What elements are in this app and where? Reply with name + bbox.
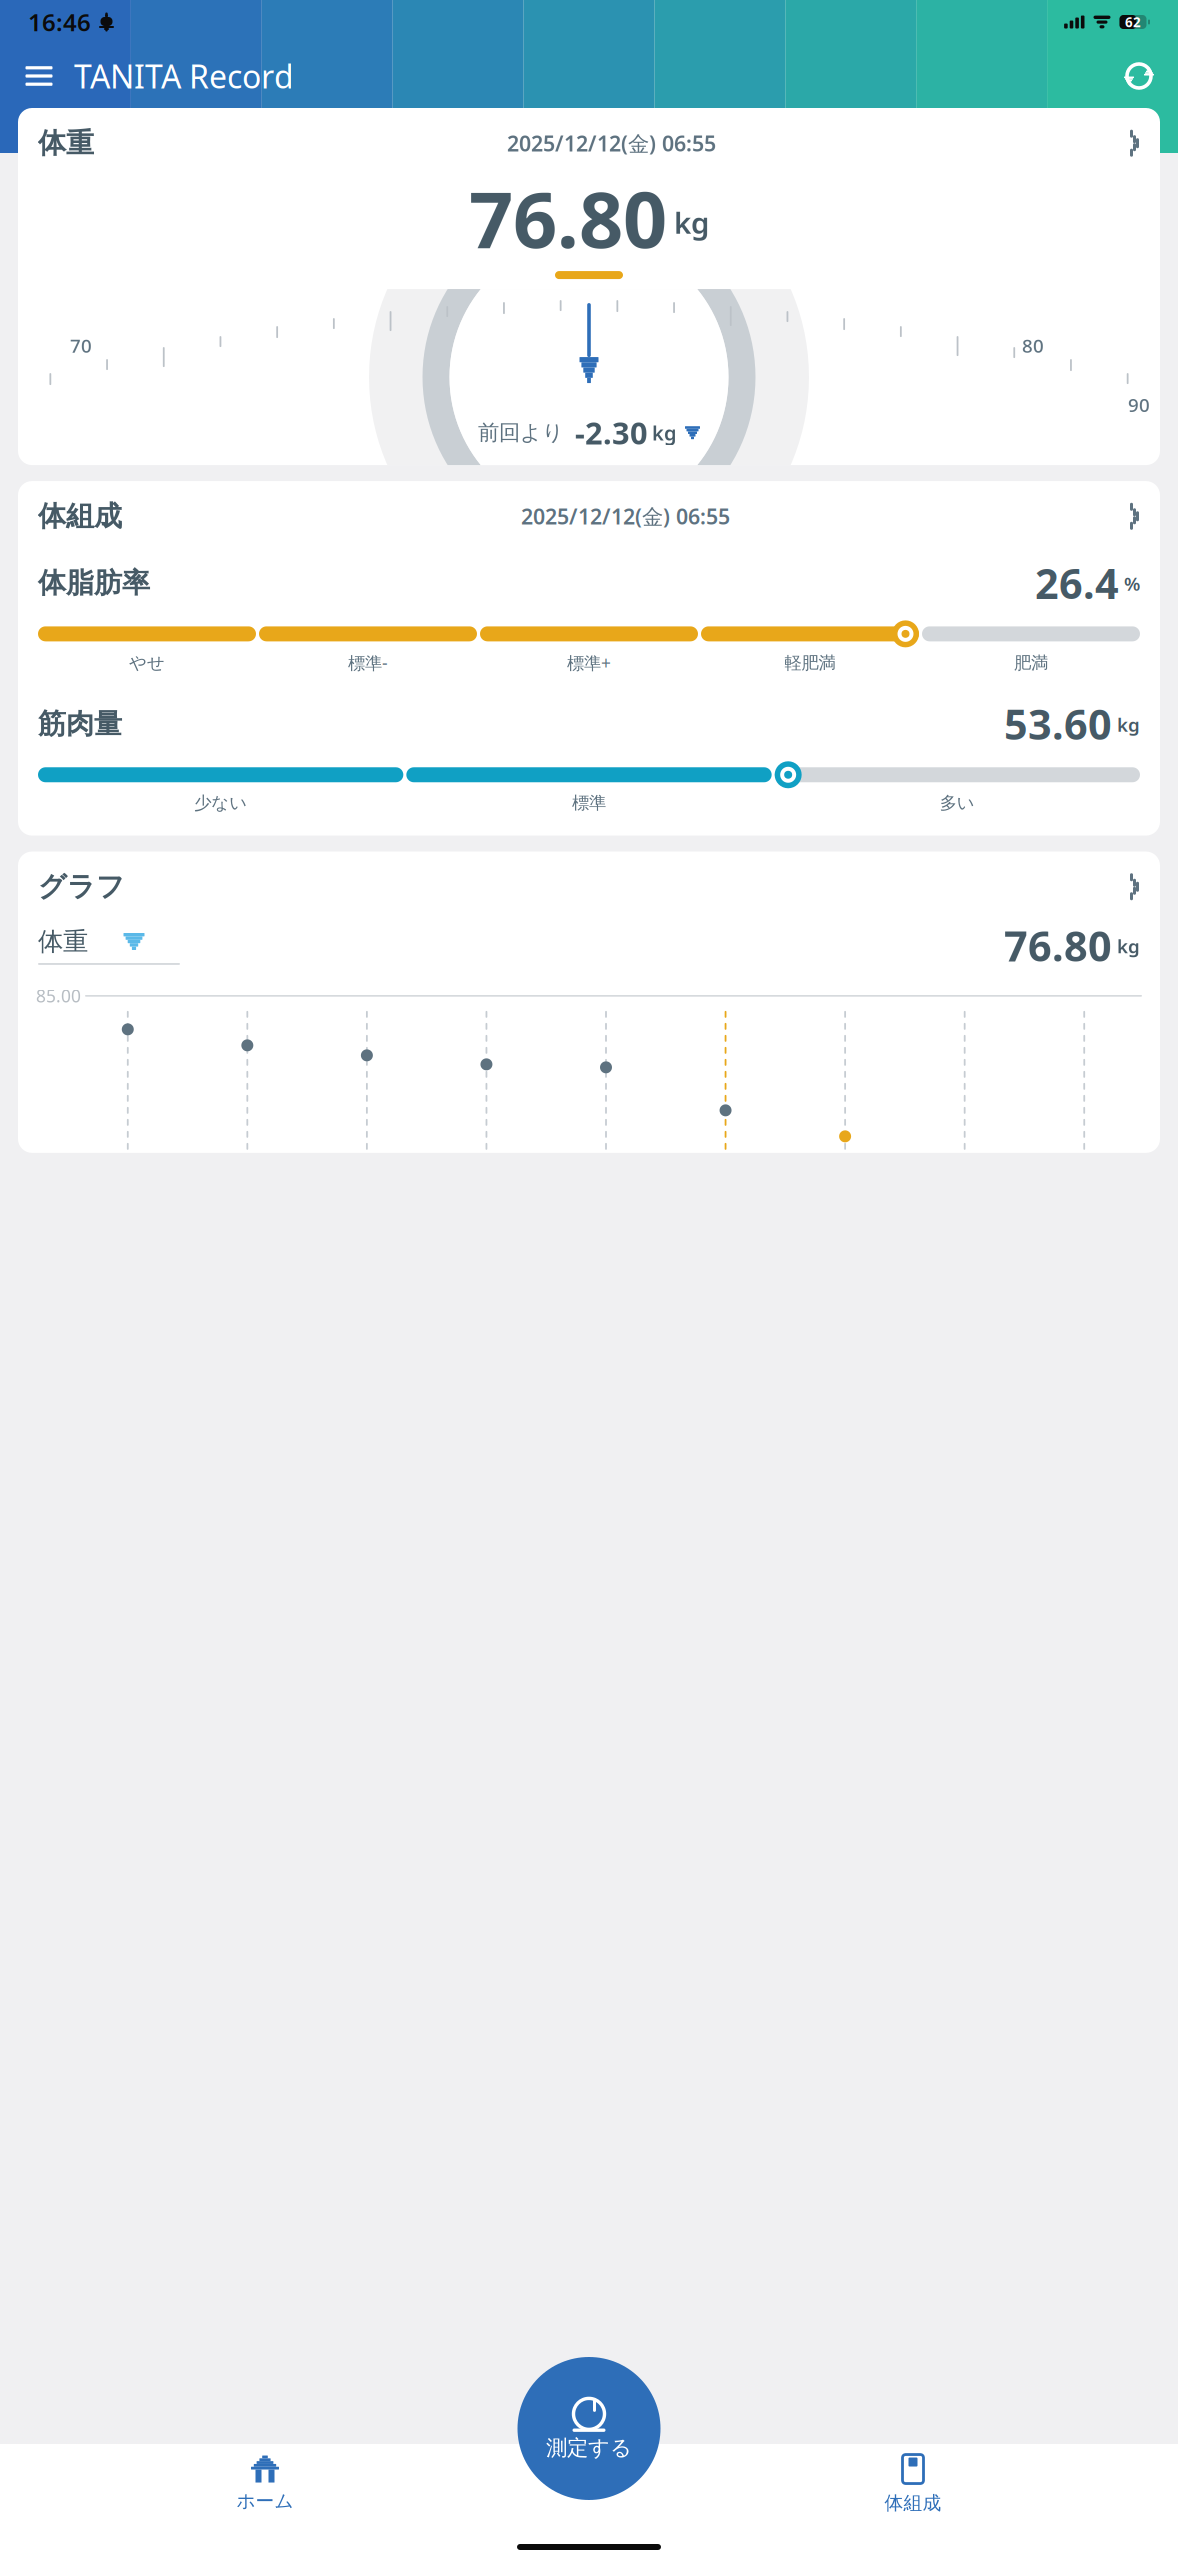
staticText: 標準+ — [567, 651, 611, 674]
button[interactable]: ホーム — [16, 2449, 514, 2518]
staticText: 体重 — [38, 926, 88, 957]
button[interactable]: 体組成 — [664, 2447, 1162, 2520]
staticText: 肥満 — [1014, 652, 1048, 673]
staticText: kg — [652, 419, 677, 446]
staticText: 体脂肪率 — [38, 566, 150, 600]
staticText: TANITA Record — [74, 55, 294, 97]
staticText: kg — [1117, 934, 1140, 958]
staticText: -2.30 — [575, 412, 648, 453]
button[interactable]: 測定する — [517, 2357, 660, 2500]
staticText: 前回より — [478, 420, 564, 446]
staticText: 体組成 — [884, 2491, 941, 2514]
staticText: kg — [1117, 712, 1140, 737]
staticText: 体重 — [38, 126, 94, 160]
staticText: 70 — [70, 333, 92, 358]
staticText: 62 — [1125, 13, 1141, 31]
staticText: 16:46 — [28, 6, 91, 38]
staticText: 85.00 — [36, 984, 81, 1007]
staticText: 筋肉量 — [38, 707, 122, 741]
staticText: やせ — [129, 652, 165, 673]
button[interactable]: 体組成 — [18, 481, 1160, 836]
button[interactable]: 体重 — [38, 926, 180, 965]
staticText: % — [1124, 571, 1140, 596]
button[interactable]: Sync — [1112, 49, 1166, 103]
staticText: グラフ — [38, 870, 125, 904]
button[interactable]: グラフ — [18, 852, 1160, 904]
staticText: kg — [674, 203, 709, 242]
staticText: 53.60 — [1004, 696, 1112, 751]
staticText: 標準 — [572, 792, 606, 814]
staticText: 測定する — [546, 2435, 632, 2461]
staticText: 体組成 — [38, 499, 122, 533]
staticText: 少ない — [194, 792, 247, 814]
staticText: 軽肥満 — [784, 652, 835, 673]
staticText: 90 — [1128, 392, 1150, 417]
staticText: 多い — [940, 792, 975, 814]
staticText: 26.4 — [1035, 555, 1119, 610]
button[interactable]: Menu — [12, 49, 66, 103]
staticText: 80 — [1022, 333, 1044, 358]
staticText: 2025/12/12(金) 06:55 — [507, 129, 716, 157]
staticText: 76.80 — [1004, 918, 1112, 973]
staticText: ホーム — [236, 2489, 293, 2512]
button[interactable]: 体重 — [18, 108, 1160, 465]
staticText: 76.80 — [469, 166, 667, 269]
staticText: 2025/12/12(金) 06:55 — [521, 502, 730, 530]
staticText: 標準- — [348, 651, 388, 674]
